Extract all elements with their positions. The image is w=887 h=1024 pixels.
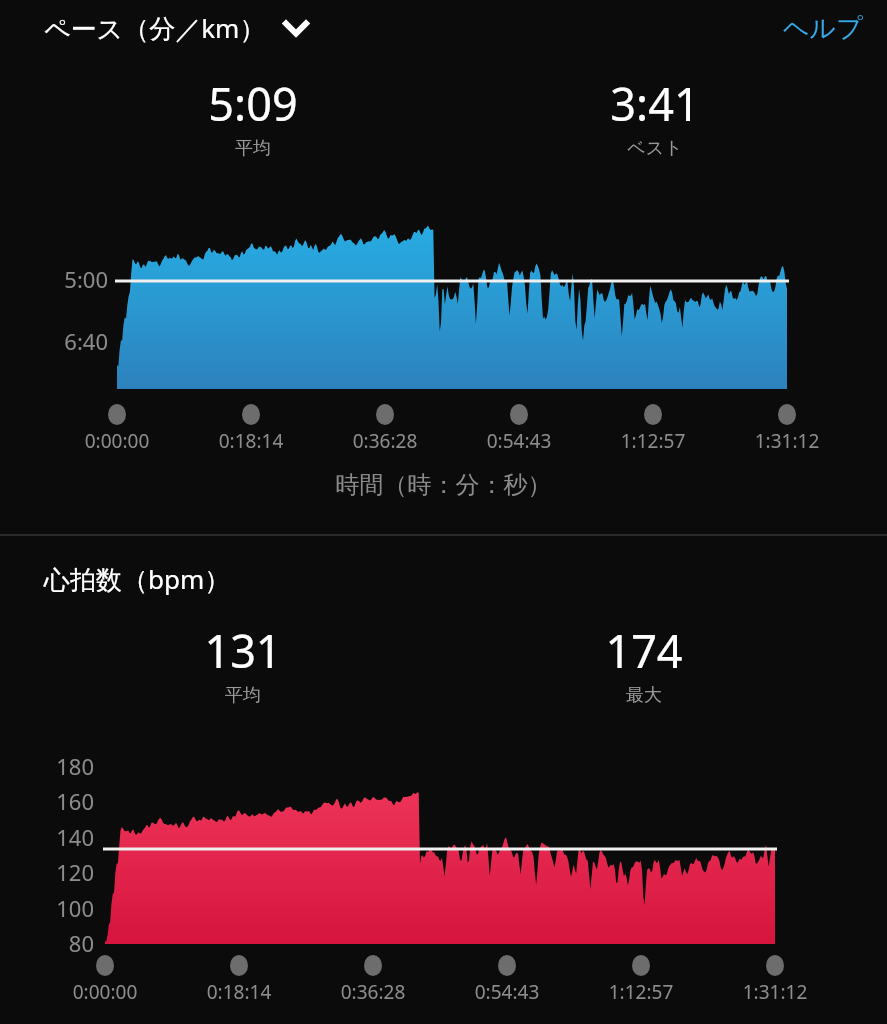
staticText: 0:18:14 [179,979,299,1005]
staticText: 心拍数（bpm） [44,561,231,597]
button[interactable]: ヘルプ [771,12,887,45]
staticText: ペース（分／km） [44,10,266,46]
staticText: 1:12:57 [593,428,713,454]
staticText: ベスト [627,137,683,160]
staticText: 120 [22,857,94,887]
staticText: 時間（時：分：秒） [0,470,887,500]
staticText: 1:31:12 [715,979,835,1005]
staticText: 140 [22,822,94,852]
staticText: 3:41 [610,73,700,134]
staticText: 平均 [225,684,261,707]
staticText: 最大 [626,684,662,707]
staticText: 174 [605,620,683,681]
staticText: 0:36:28 [325,428,445,454]
button[interactable]: 心拍数（bpm） [44,561,231,597]
staticText: 100 [22,893,94,923]
staticText: 160 [22,786,94,816]
staticText: 0:00:00 [57,428,177,454]
other: Change metric [280,12,312,44]
staticText: 5:00 [38,264,108,294]
staticText: 0:36:28 [313,979,433,1005]
staticText: 1:12:57 [581,979,701,1005]
staticText: 131 [204,620,282,681]
staticText: 平均 [235,137,271,160]
staticText: 1:31:12 [727,428,847,454]
staticText: 0:54:43 [447,979,567,1005]
button[interactable]: ペース（分／km） [44,10,312,46]
staticText: 180 [22,751,94,781]
staticText: ヘルプ [783,12,863,45]
staticText: 80 [22,928,94,958]
staticText: 0:00:00 [45,979,165,1005]
staticText: 0:18:14 [191,428,311,454]
staticText: 0:54:43 [459,428,579,454]
staticText: 6:40 [38,326,108,356]
staticText: 5:09 [208,73,298,134]
